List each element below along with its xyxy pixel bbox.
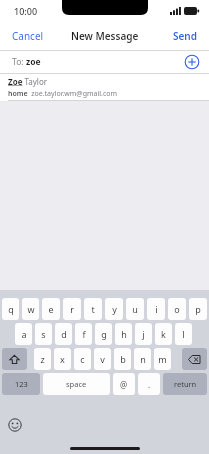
- button[interactable]: Emoji: [8, 418, 22, 432]
- staticText: j: [142, 328, 145, 340]
- staticText: 10:00: [14, 5, 38, 17]
- staticText: x: [60, 353, 65, 365]
- staticText: p: [195, 303, 201, 315]
- button[interactable]: n: [134, 348, 151, 370]
- staticText: v: [100, 353, 105, 365]
- button[interactable]: Shift: [2, 348, 27, 370]
- button[interactable]: e: [42, 298, 60, 320]
- staticText: l: [182, 328, 185, 340]
- staticText: Zoe Taylor: [8, 76, 48, 87]
- button[interactable]: q: [2, 298, 19, 320]
- button[interactable]: Add contact: [184, 54, 200, 70]
- button[interactable]: Zoe Taylor: [0, 74, 209, 100]
- button[interactable]: p: [189, 298, 207, 320]
- staticText: 123: [15, 379, 28, 389]
- staticText: r: [70, 303, 74, 315]
- button[interactable]: v: [94, 348, 111, 370]
- button[interactable]: r: [63, 298, 81, 320]
- staticText: home zoe.taylor.wm@gmail.com: [8, 89, 118, 99]
- staticText: e: [48, 303, 54, 315]
- button[interactable]: s: [35, 323, 52, 345]
- staticText: .: [148, 379, 151, 390]
- staticText: i: [155, 303, 158, 315]
- staticText: c: [80, 353, 85, 365]
- staticText: zoe: [26, 56, 41, 68]
- staticText: return: [174, 379, 197, 389]
- staticText: n: [140, 353, 146, 365]
- button[interactable]: Cancel: [0, 24, 56, 48]
- button[interactable]: o: [168, 298, 186, 320]
- staticText: g: [101, 328, 107, 340]
- button[interactable]: l: [175, 323, 192, 345]
- staticText: h: [121, 328, 127, 340]
- button[interactable]: u: [126, 298, 144, 320]
- staticText: s: [41, 328, 46, 340]
- button[interactable]: a: [15, 323, 32, 345]
- staticText: k: [161, 328, 166, 340]
- button[interactable]: g: [95, 323, 112, 345]
- button[interactable]: w: [22, 298, 39, 320]
- button[interactable]: t: [84, 298, 102, 320]
- button[interactable]: m: [154, 348, 171, 370]
- button[interactable]: Send: [161, 24, 209, 48]
- staticText: a: [21, 328, 27, 340]
- staticText: u: [132, 303, 138, 315]
- button[interactable]: @: [113, 373, 135, 395]
- staticText: m: [158, 353, 167, 365]
- staticText: b: [120, 353, 126, 365]
- button[interactable]: f: [75, 323, 92, 345]
- staticText: Send: [173, 29, 197, 43]
- staticText: z: [40, 353, 45, 365]
- staticText: @: [120, 379, 128, 390]
- staticText: space: [66, 379, 87, 389]
- staticText: y: [112, 303, 117, 315]
- button[interactable]: h: [115, 323, 132, 345]
- button[interactable]: k: [155, 323, 172, 345]
- staticText: New Message: [71, 29, 139, 43]
- button[interactable]: z: [34, 348, 51, 370]
- button[interactable]: d: [55, 323, 72, 345]
- button[interactable]: 123: [2, 373, 40, 395]
- button[interactable]: x: [54, 348, 71, 370]
- button[interactable]: c: [74, 348, 91, 370]
- button[interactable]: b: [114, 348, 131, 370]
- button[interactable]: space: [43, 373, 110, 395]
- button[interactable]: i: [147, 298, 165, 320]
- button[interactable]: j: [135, 323, 152, 345]
- button[interactable]: return: [163, 373, 207, 395]
- button[interactable]: .: [138, 373, 160, 395]
- staticText: To:: [12, 56, 26, 68]
- button[interactable]: y: [105, 298, 123, 320]
- staticText: q: [8, 303, 14, 315]
- staticText: t: [91, 303, 95, 315]
- staticText: d: [61, 328, 67, 340]
- staticText: o: [174, 303, 180, 315]
- staticText: f: [82, 328, 86, 340]
- staticText: Cancel: [12, 29, 44, 43]
- button[interactable]: Delete: [182, 348, 207, 370]
- staticText: w: [27, 303, 35, 315]
